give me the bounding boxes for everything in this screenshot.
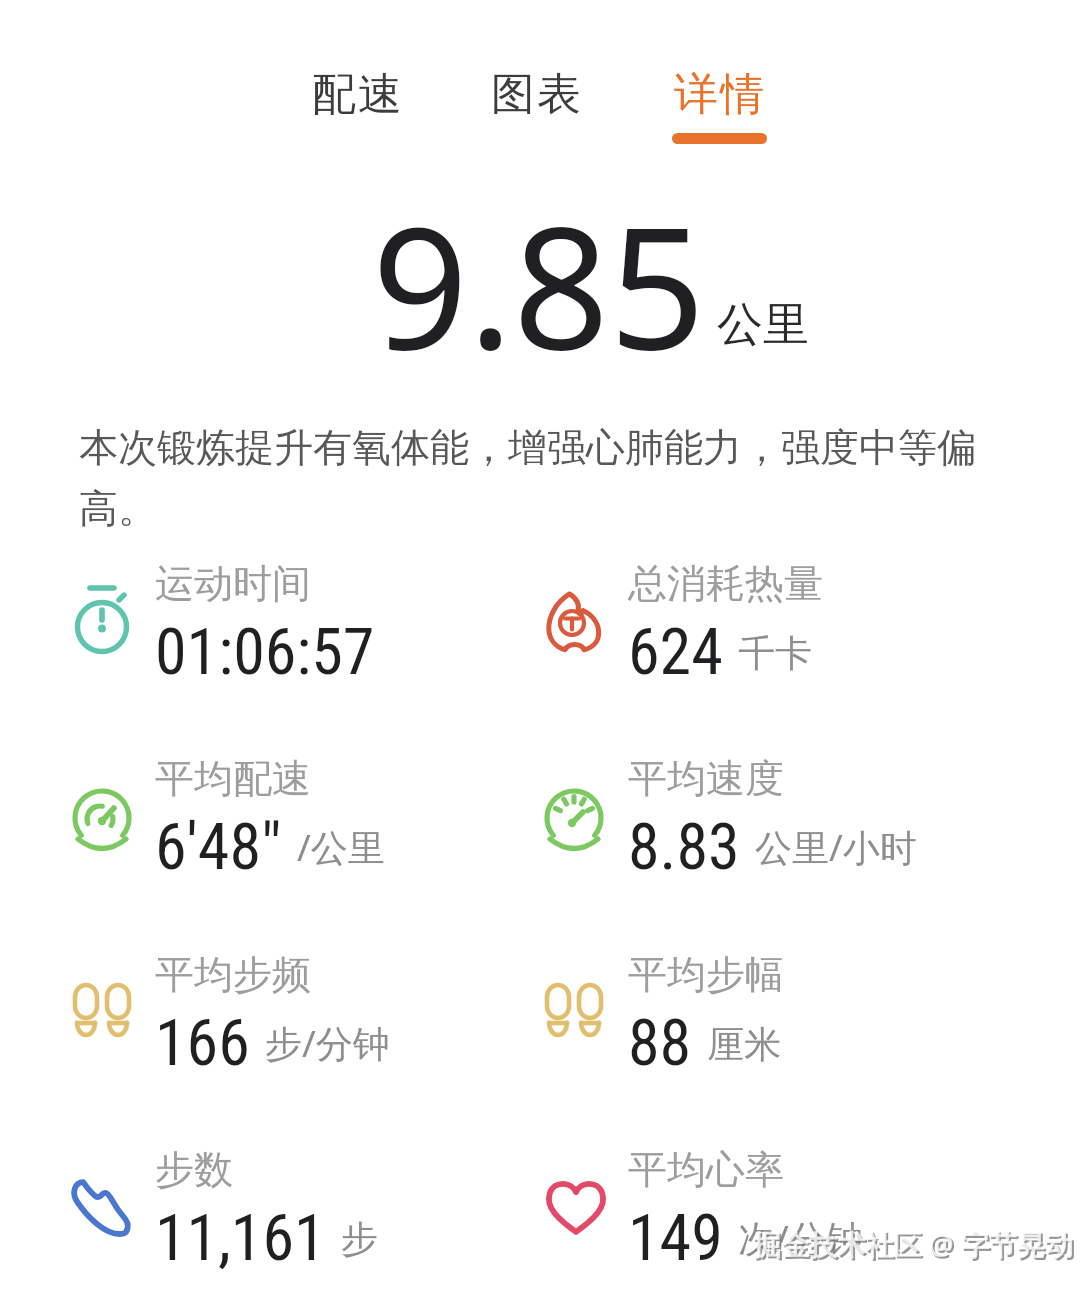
- staticText: 公里: [717, 296, 809, 354]
- staticText: 9.85: [372, 169, 706, 398]
- button[interactable]: [544, 1176, 608, 1238]
- staticText: 149: [628, 1201, 723, 1276]
- button[interactable]: 步数: [155, 1145, 378, 1276]
- button[interactable]: 平均步频: [155, 950, 390, 1081]
- button[interactable]: 总消耗热量: [628, 559, 823, 690]
- button[interactable]: [73, 582, 131, 656]
- staticText: 图表: [490, 67, 582, 122]
- staticText: 88: [628, 1006, 692, 1081]
- staticText: 掘金技术社区 @ 字节晃动: [753, 1225, 1073, 1263]
- staticText: 11,161: [155, 1201, 326, 1276]
- button[interactable]: 平均心率: [628, 1145, 863, 1276]
- staticText: 01:06:57: [155, 615, 375, 690]
- staticText: 平均心率: [628, 1145, 784, 1194]
- button[interactable]: 平均步幅: [628, 950, 784, 1081]
- staticText: 掘金技术社区 @ 字节晃动: [755, 1227, 1075, 1265]
- staticText: 166: [155, 1006, 250, 1081]
- button[interactable]: [71, 788, 133, 854]
- staticText: 本次锻炼提升有氧体能，增强心肺能力，强度中等偏高。: [79, 423, 1009, 534]
- staticText: 平均配速: [155, 754, 311, 803]
- staticText: 厘米: [707, 1021, 781, 1068]
- staticText: 平均速度: [628, 754, 784, 803]
- button[interactable]: [545, 983, 603, 1037]
- staticText: 总消耗热量: [628, 559, 823, 608]
- button[interactable]: 平均速度: [628, 754, 917, 885]
- staticText: 步数: [155, 1145, 233, 1194]
- button[interactable]: [546, 592, 602, 658]
- staticText: 千卡: [738, 630, 812, 677]
- staticText: 平均步幅: [628, 950, 784, 999]
- button[interactable]: 详情: [663, 67, 775, 144]
- staticText: 详情: [673, 67, 765, 122]
- staticText: 步: [341, 1216, 378, 1263]
- staticText: 624: [628, 615, 723, 690]
- staticText: 6'48": [155, 810, 282, 885]
- staticText: 运动时间: [155, 559, 311, 608]
- staticText: 配速: [311, 67, 403, 122]
- button[interactable]: 平均配速: [155, 754, 385, 885]
- button[interactable]: [543, 788, 605, 854]
- button[interactable]: 配速: [301, 67, 413, 133]
- button[interactable]: [70, 1178, 130, 1246]
- staticText: 平均步频: [155, 950, 311, 999]
- staticText: /公里: [297, 821, 385, 872]
- staticText: 8.83: [628, 810, 740, 885]
- button[interactable]: 运动时间: [155, 559, 375, 690]
- button[interactable]: [73, 983, 131, 1037]
- staticText: 步/分钟: [265, 1017, 390, 1068]
- staticText: 次/分钟: [738, 1212, 863, 1263]
- staticText: 公里/小时: [755, 821, 917, 872]
- button[interactable]: 图表: [480, 67, 592, 133]
